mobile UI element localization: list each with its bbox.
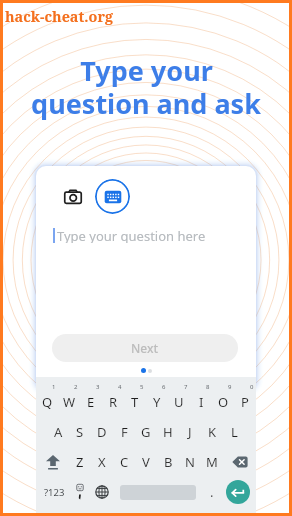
button[interactable]: P [234,387,256,417]
staticText: Q [42,393,53,411]
button[interactable]: Z [69,447,91,477]
staticText: J [188,423,192,441]
staticText: H [163,423,173,441]
button[interactable]: A [47,417,69,447]
staticText: A [54,423,63,441]
staticText: L [231,423,238,441]
staticText: S [76,423,84,441]
staticText: R [109,393,118,411]
button[interactable]: N [179,447,201,477]
button[interactable]: H [157,417,179,447]
button[interactable]: K [201,417,223,447]
button[interactable]: Camera [55,179,90,214]
button[interactable]: Enter [226,477,250,507]
staticText: W [63,393,76,411]
staticText: T [131,393,139,411]
staticText: 2 [74,383,78,391]
button[interactable]: Change language [91,477,113,507]
button[interactable]: V [135,447,157,477]
button[interactable]: G [135,417,157,447]
staticText: Type your question here [57,227,206,243]
staticText: 4 [118,383,122,391]
staticText: Next [131,340,159,356]
button[interactable]: C [113,447,135,477]
button[interactable]: Backspace [223,447,256,477]
button[interactable]: S [69,417,91,447]
button[interactable]: Shift [36,447,69,477]
staticText: 9 [228,383,232,391]
staticText: P [241,393,249,411]
button[interactable]: D [91,417,113,447]
staticText: hack-cheat.org [5,7,113,27]
staticText: D [97,423,107,441]
staticText: U [174,393,184,411]
button[interactable]: I [190,387,212,417]
button[interactable]: F [113,417,135,447]
staticText: ?123 [44,486,65,499]
button[interactable]: Next [52,334,238,362]
staticText: Y [153,393,161,411]
staticText: X [98,453,106,471]
staticText: M [206,453,218,471]
button[interactable]: M [201,447,223,477]
staticText: K [208,423,217,441]
staticText: C [120,453,129,471]
button[interactable]: Q [36,387,58,417]
staticText: N [185,453,195,471]
button[interactable]: ?123 [39,477,69,507]
button[interactable]: Y [146,387,168,417]
button[interactable]: O [212,387,234,417]
button[interactable]: U [168,387,190,417]
staticText: F [121,423,128,441]
button[interactable]: X [91,447,113,477]
staticText: . [210,483,214,501]
button[interactable]: B [157,447,179,477]
staticText: V [142,453,150,471]
staticText: Type your [80,52,213,89]
staticText: 8 [206,383,210,391]
staticText: 5 [140,383,144,391]
staticText: 7 [184,383,188,391]
button[interactable]: W [58,387,80,417]
staticText: O [218,393,229,411]
button[interactable]: T [124,387,146,417]
button[interactable]: Keyboard [95,179,130,214]
button[interactable]: J [179,417,201,447]
button[interactable]: E [80,387,102,417]
staticText: 3 [96,383,100,391]
staticText: G [141,423,151,441]
button[interactable]: Comma and emoji [69,477,91,507]
staticText: 6 [162,383,166,391]
staticText: E [87,393,95,411]
staticText: question and ask [31,85,261,122]
button[interactable]: R [102,387,124,417]
button[interactable]: . [201,477,223,507]
staticText: 0 [250,383,254,391]
staticText: 1 [52,383,56,391]
staticText: I [199,393,204,411]
button[interactable]: L [223,417,245,447]
staticText: B [164,453,173,471]
staticText: Z [76,453,84,471]
